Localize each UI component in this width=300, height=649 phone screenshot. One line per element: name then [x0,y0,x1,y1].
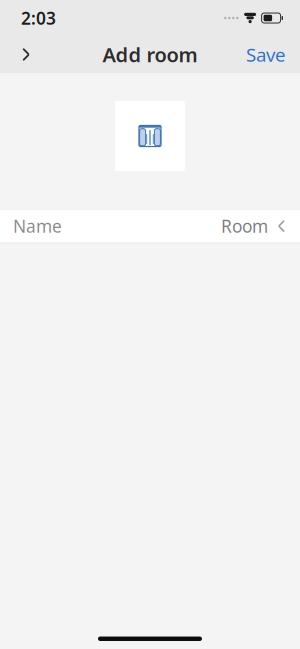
button[interactable]: Name [0,210,300,243]
staticText: 2:03 [21,6,56,29]
button[interactable]: Choose room icon [115,101,185,171]
button[interactable]: Save [238,36,294,73]
staticText: Name [13,215,62,238]
staticText: Room [221,215,268,238]
staticText: Add room [102,41,197,68]
button[interactable]: Back [6,36,46,73]
staticText: Save [246,42,286,67]
